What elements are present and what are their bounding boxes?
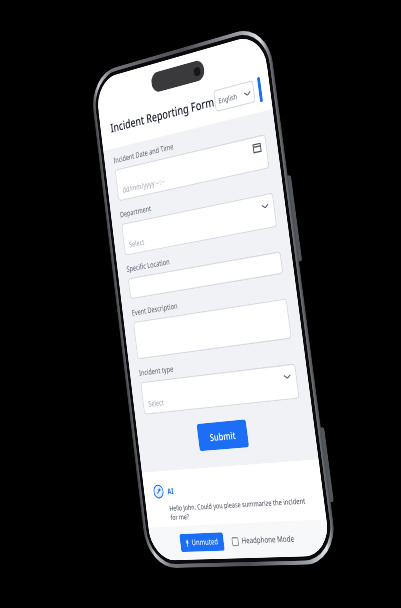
staticText: Incident Reporting Form	[110, 93, 215, 136]
staticText: Headphone Mode	[241, 533, 295, 546]
staticText: AI	[167, 486, 175, 497]
staticText: Event Description	[131, 301, 179, 318]
staticText: Select	[129, 237, 145, 250]
button[interactable]: Select	[140, 363, 300, 415]
staticText: English	[218, 91, 238, 105]
staticText: Specific Location	[126, 257, 170, 274]
staticText: Select	[148, 397, 165, 409]
staticText: Department	[119, 203, 152, 220]
button[interactable]: Unmuted	[179, 532, 225, 552]
button[interactable]: Clear	[257, 77, 263, 102]
button[interactable]	[128, 251, 283, 299]
button[interactable]	[133, 298, 292, 359]
staticText: Incident type	[138, 364, 174, 378]
other: AI assistant	[153, 484, 164, 499]
staticText: Hello John. Could you please summarize t…	[169, 495, 315, 521]
staticText: Submit	[209, 428, 236, 444]
button[interactable]: Headphone Mode	[231, 533, 295, 546]
staticText: Unmuted	[191, 536, 219, 548]
button[interactable]: Select	[121, 192, 277, 256]
button[interactable]: English	[213, 80, 256, 112]
staticText: dd/mm/yyyy --:--	[122, 176, 166, 195]
button[interactable]: dd/mm/yyyy --:--	[115, 134, 270, 201]
staticText: Incident Date and Time	[113, 141, 174, 166]
button[interactable]: Submit	[196, 419, 249, 451]
